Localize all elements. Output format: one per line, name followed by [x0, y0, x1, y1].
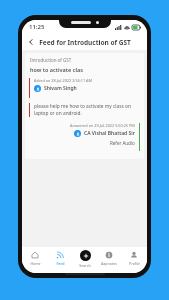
button[interactable]: Profile — [122, 250, 146, 267]
staticText: Feed for Introduction of GST — [39, 38, 131, 47]
button[interactable]: Refer Audio — [110, 140, 135, 146]
staticText: Asked on 28-Jul-2022 2:54:11 AM — [34, 78, 92, 83]
staticText: Search — [79, 263, 91, 268]
staticText: 11:25 — [29, 23, 45, 31]
staticText: how to activate clas — [30, 66, 83, 73]
button[interactable]: Aapnotes — [97, 250, 121, 267]
staticText: Answered on 29-Jul-2022 5:50:25 PM — [70, 123, 135, 128]
staticText: Shivam Singh — [44, 85, 77, 92]
button[interactable]: Back — [25, 36, 37, 48]
button[interactable]: Search — [73, 250, 97, 268]
staticText: Home — [30, 261, 41, 266]
button[interactable]: Feed — [48, 250, 72, 267]
staticText: Introduction of GST — [30, 57, 72, 63]
staticText: Feed — [56, 261, 65, 266]
staticText: CA Vishal Bhattad Sir — [84, 130, 135, 137]
staticText: Profile — [129, 261, 140, 266]
staticText: Aapnotes — [101, 261, 117, 266]
staticText: please help me how to activate my class … — [34, 103, 138, 117]
button[interactable]: Home — [23, 250, 47, 267]
